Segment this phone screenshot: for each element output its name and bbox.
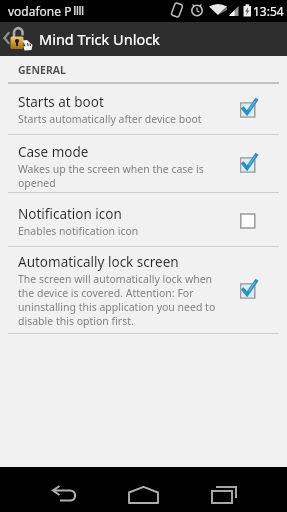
staticText: Starts automatically after device boot: [18, 112, 202, 126]
button[interactable]: Case mode: [0, 135, 287, 192]
staticText: The screen will automatically lock when: [18, 272, 213, 286]
staticText: uninstalling this application you need t…: [18, 300, 216, 314]
button[interactable]: [194, 467, 254, 512]
staticText: GENERAL: [18, 63, 66, 77]
button[interactable]: [113, 467, 174, 512]
staticText: vodafone P: [8, 3, 72, 19]
button[interactable]: [34, 467, 94, 512]
staticText: Starts at boot: [18, 93, 104, 111]
button[interactable]: Automatically lock screen: [0, 247, 287, 333]
staticText: Automatically lock screen: [18, 253, 179, 271]
button[interactable]: Mind Trick Unlock: [0, 22, 287, 56]
button[interactable]: Notification icon: [0, 193, 287, 246]
staticText: disable this option first.: [18, 314, 134, 328]
staticText: Case mode: [18, 143, 89, 161]
staticText: Mind Trick Unlock: [39, 29, 160, 49]
staticText: Enables notification icon: [18, 224, 139, 238]
button[interactable]: Starts at boot: [0, 84, 287, 134]
staticText: opened: [18, 176, 56, 190]
staticText: Wakes up the screen when the case is: [18, 162, 204, 176]
staticText: 13:54: [253, 3, 284, 19]
staticText: Notification icon: [18, 205, 122, 223]
staticText: the device is covered. Attention: For: [18, 286, 194, 300]
